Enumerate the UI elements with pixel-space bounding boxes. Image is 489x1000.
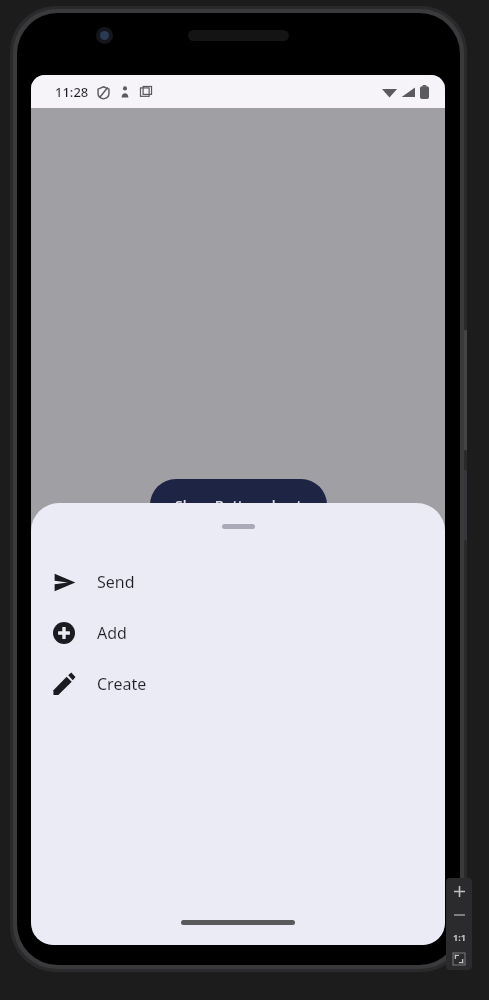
button[interactable]: Create [31,658,445,709]
staticText: Add [97,622,127,644]
other: Send [53,571,76,594]
staticText: 1:1 [453,931,466,943]
button[interactable]: Send [31,556,445,607]
button[interactable]: Zoom to fit [446,948,472,970]
staticText: Show Bottomsheet [175,496,302,515]
button[interactable]: Zoom in [446,878,472,904]
other: Add [53,622,75,644]
button[interactable]: Show Bottomsheet [150,479,327,531]
staticText: Create [97,673,147,695]
other: Create [53,673,75,695]
staticText: 11:28 [55,83,89,101]
staticText: Send [97,571,135,593]
button[interactable]: Add [31,607,445,658]
button[interactable]: Zoom out [446,904,472,926]
button[interactable]: 1:1 [446,926,472,948]
